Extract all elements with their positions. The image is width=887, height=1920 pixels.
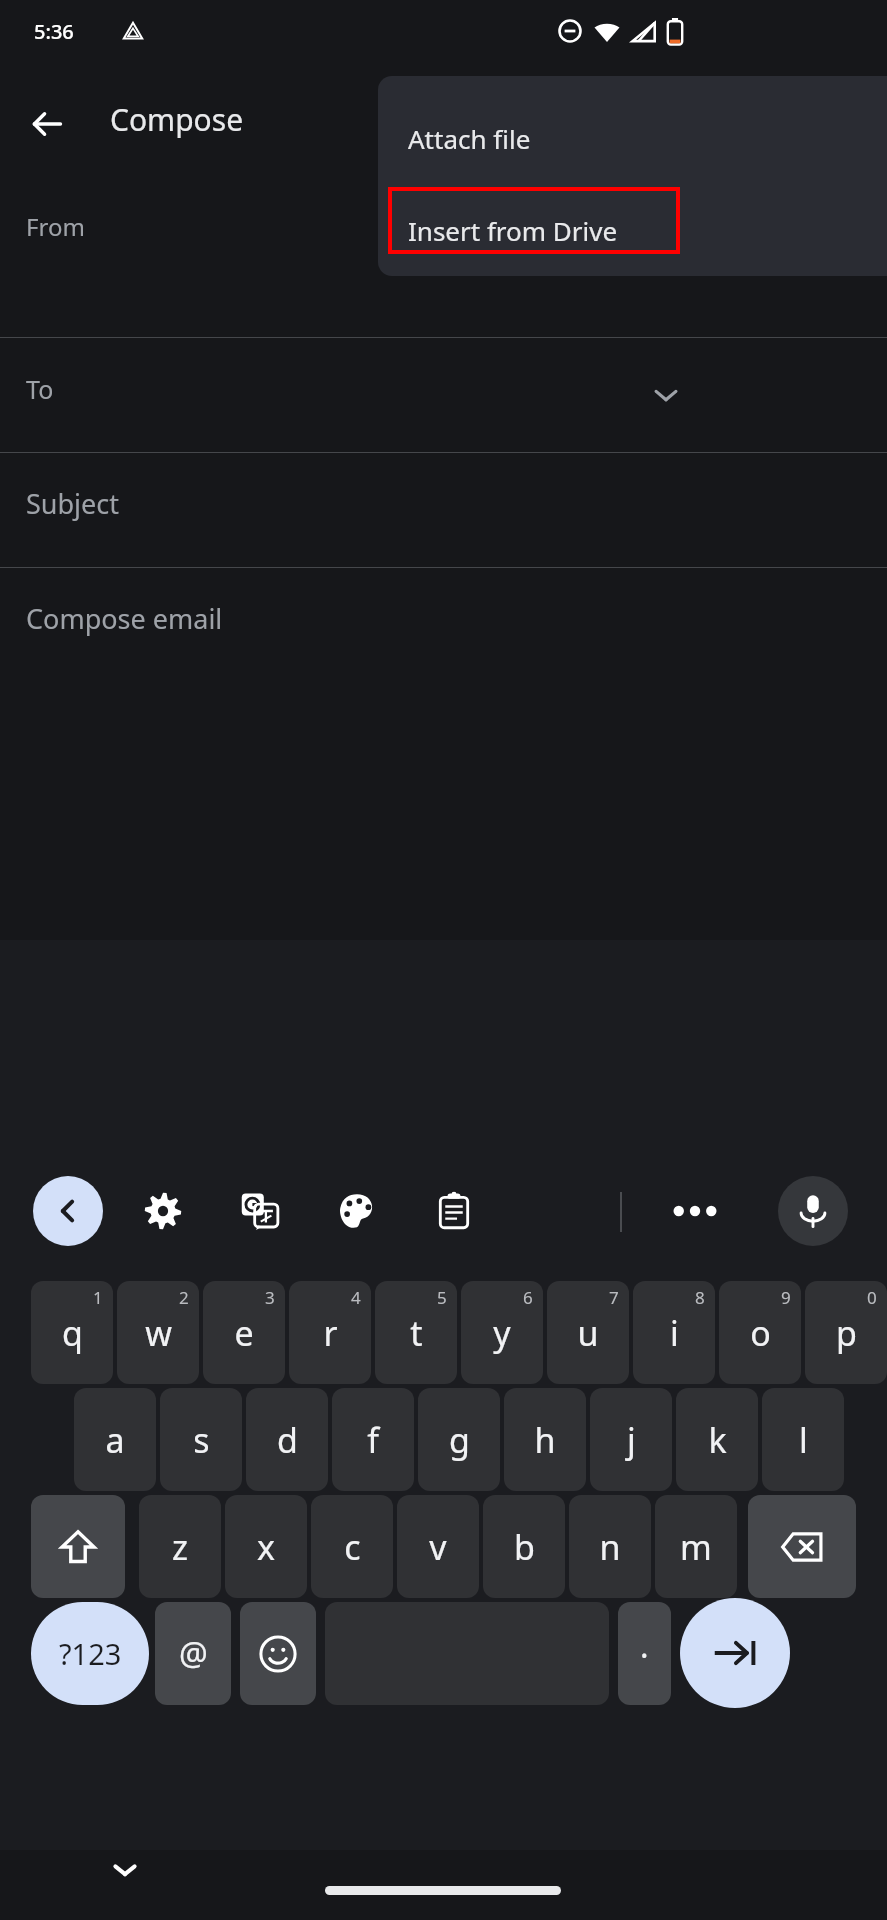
staticText: 4: [351, 1286, 361, 1309]
button[interactable]: c: [311, 1495, 393, 1598]
staticText: a: [105, 1417, 125, 1463]
button[interactable]: r: [289, 1281, 371, 1384]
button[interactable]: Backspace: [748, 1495, 856, 1598]
button[interactable]: k: [676, 1388, 758, 1491]
staticText: @: [179, 1632, 208, 1676]
button[interactable]: Back: [16, 93, 78, 155]
button[interactable]: Hide keyboard: [95, 1840, 155, 1900]
button[interactable]: Keyboard settings: [128, 1176, 198, 1246]
staticText: Subject: [26, 485, 120, 522]
button[interactable]: p: [805, 1281, 887, 1384]
button[interactable]: Translate: [225, 1176, 295, 1246]
staticText: Compose email: [26, 600, 223, 637]
staticText: j: [627, 1417, 636, 1463]
button[interactable]: i: [633, 1281, 715, 1384]
staticText: From: [26, 210, 85, 243]
staticText: f: [367, 1417, 379, 1463]
button[interactable]: Insert from Drive: [378, 184, 887, 276]
button[interactable]: Attach file: [378, 92, 887, 184]
staticText: t: [410, 1310, 423, 1356]
button[interactable]: Themes: [322, 1176, 392, 1246]
button[interactable]: .: [618, 1602, 671, 1705]
staticText: Attach file: [408, 121, 531, 156]
button[interactable]: n: [569, 1495, 651, 1598]
staticText: 3: [265, 1286, 275, 1309]
button[interactable]: j: [590, 1388, 672, 1491]
staticText: To: [26, 372, 54, 406]
button[interactable]: u: [547, 1281, 629, 1384]
staticText: 1: [93, 1286, 103, 1309]
staticText: m: [680, 1524, 712, 1570]
button[interactable]: l: [762, 1388, 844, 1491]
button[interactable]: a: [74, 1388, 156, 1491]
button[interactable]: Shift: [31, 1495, 125, 1598]
button[interactable]: ?123: [31, 1602, 149, 1705]
button[interactable]: Voice input: [778, 1176, 848, 1246]
staticText: Compose: [110, 99, 244, 140]
staticText: n: [599, 1524, 621, 1570]
staticText: b: [514, 1524, 535, 1570]
button[interactable]: s: [160, 1388, 242, 1491]
staticText: 5: [437, 1286, 447, 1309]
button[interactable]: e: [203, 1281, 285, 1384]
button[interactable]: Compose email: [0, 568, 887, 940]
staticText: e: [234, 1310, 254, 1356]
button[interactable]: Enter: [680, 1598, 790, 1708]
button[interactable]: Back: [33, 1176, 103, 1246]
staticText: i: [670, 1310, 679, 1356]
staticText: 7: [609, 1286, 619, 1309]
button[interactable]: y: [461, 1281, 543, 1384]
staticText: d: [277, 1417, 298, 1463]
button[interactable]: g: [418, 1388, 500, 1491]
staticText: o: [750, 1310, 771, 1356]
button[interactable]: Clipboard: [419, 1176, 489, 1246]
staticText: c: [344, 1524, 361, 1570]
staticText: 9: [781, 1286, 791, 1309]
staticText: Insert from Drive: [408, 213, 618, 248]
button[interactable]: d: [246, 1388, 328, 1491]
staticText: h: [534, 1417, 556, 1463]
staticText: g: [449, 1417, 470, 1463]
button[interactable]: v: [397, 1495, 479, 1598]
staticText: k: [708, 1417, 727, 1463]
staticText: v: [429, 1524, 447, 1570]
button[interactable]: More options: [660, 1176, 730, 1246]
button[interactable]: @: [155, 1602, 231, 1705]
staticText: r: [323, 1310, 338, 1356]
staticText: y: [493, 1310, 511, 1356]
button[interactable]: To: [0, 338, 887, 452]
button[interactable]: h: [504, 1388, 586, 1491]
button[interactable]: b: [483, 1495, 565, 1598]
button[interactable]: t: [375, 1281, 457, 1384]
button[interactable]: Subject: [0, 453, 887, 567]
staticText: s: [193, 1417, 210, 1463]
staticText: 5:36: [34, 18, 74, 45]
staticText: 6: [523, 1286, 533, 1309]
button[interactable]: Emoji: [240, 1602, 316, 1705]
button[interactable]: z: [139, 1495, 221, 1598]
staticText: x: [257, 1524, 275, 1570]
button[interactable]: q: [31, 1281, 113, 1384]
staticText: 8: [695, 1286, 705, 1309]
staticText: 0: [867, 1286, 877, 1309]
button[interactable]: Expand recipients: [635, 364, 697, 426]
button[interactable]: o: [719, 1281, 801, 1384]
staticText: 2: [179, 1286, 189, 1309]
staticText: z: [172, 1524, 188, 1570]
staticText: ?123: [59, 1634, 122, 1673]
staticText: l: [799, 1417, 808, 1463]
button[interactable]: w: [117, 1281, 199, 1384]
staticText: p: [836, 1310, 857, 1356]
button[interactable]: m: [655, 1495, 737, 1598]
staticText: u: [577, 1310, 599, 1356]
button[interactable]: x: [225, 1495, 307, 1598]
button[interactable]: f: [332, 1388, 414, 1491]
staticText: w: [145, 1310, 172, 1356]
button[interactable]: From: [0, 170, 887, 337]
staticText: q: [62, 1310, 83, 1356]
staticText: .: [640, 1624, 649, 1668]
